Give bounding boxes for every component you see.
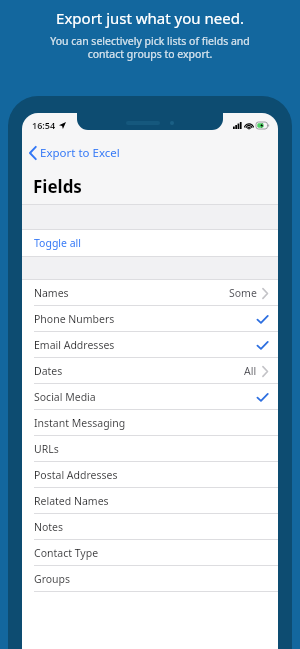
button[interactable]: Notes (22, 514, 278, 540)
staticText: Phone Numbers (34, 312, 115, 326)
button[interactable]: Related Names (22, 488, 278, 514)
button[interactable]: Names (22, 280, 278, 306)
button[interactable]: Contact Type (22, 540, 278, 566)
staticText: Groups (34, 572, 71, 586)
staticText: Some (229, 286, 257, 300)
staticText: Export just what you need. (56, 8, 244, 28)
staticText: You can selectively pick lists of fields… (50, 34, 250, 61)
button[interactable]: URLs (22, 436, 278, 462)
button[interactable]: Toggle all (22, 230, 278, 256)
staticText: Toggle all (34, 236, 82, 250)
button[interactable]: Groups (22, 566, 278, 592)
staticText: Fields (33, 175, 82, 198)
button[interactable]: Phone Numbers (22, 306, 278, 332)
staticText: Contact Type (34, 546, 99, 560)
staticText: Dates (34, 364, 63, 378)
staticText: Names (34, 286, 69, 300)
button[interactable]: Email Addresses (22, 332, 278, 358)
staticText: Email Addresses (34, 338, 115, 352)
button[interactable]: Instant Messaging (22, 410, 278, 436)
button[interactable]: Social Media (22, 384, 278, 410)
staticText: Related Names (34, 494, 109, 508)
staticText: Social Media (34, 390, 96, 404)
button[interactable]: Dates (22, 358, 278, 384)
button[interactable]: Postal Addresses (22, 462, 278, 488)
button[interactable]: Export to Excel (29, 145, 120, 161)
staticText: 16:54 (32, 119, 56, 131)
staticText: Instant Messaging (34, 416, 126, 430)
staticText: All (244, 364, 257, 378)
staticText: Export to Excel (40, 145, 120, 161)
staticText: Postal Addresses (34, 468, 118, 482)
staticText: URLs (34, 442, 59, 456)
staticText: Notes (34, 520, 64, 534)
